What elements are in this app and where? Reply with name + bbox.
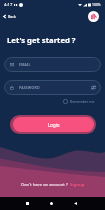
staticText: Signup — [70, 182, 85, 188]
other: Show password — [91, 85, 96, 90]
button[interactable]: App logo — [88, 11, 99, 22]
button[interactable]: EMAIL — [4, 57, 101, 72]
button[interactable]: PASSWORD — [4, 80, 101, 95]
button[interactable]: Back — [68, 197, 83, 210]
button[interactable]: Home — [44, 197, 59, 210]
button[interactable]: Back — [0, 12, 19, 21]
button[interactable]: Remember me — [61, 97, 97, 106]
staticText: Remember me — [70, 99, 95, 104]
staticText: 4:17 — [4, 2, 13, 8]
staticText: Don't have an account ? — [21, 182, 68, 188]
button[interactable]: Recents — [20, 197, 35, 210]
button[interactable]: Login — [10, 115, 96, 134]
staticText: Login — [48, 122, 60, 128]
staticText: EMAIL — [19, 62, 31, 67]
staticText: 100% — [92, 2, 101, 7]
staticText: PASSWORD — [19, 85, 40, 90]
staticText: Back — [8, 14, 16, 19]
staticText: Let's get started ? — [7, 35, 76, 45]
button[interactable]: Signup — [70, 182, 85, 188]
